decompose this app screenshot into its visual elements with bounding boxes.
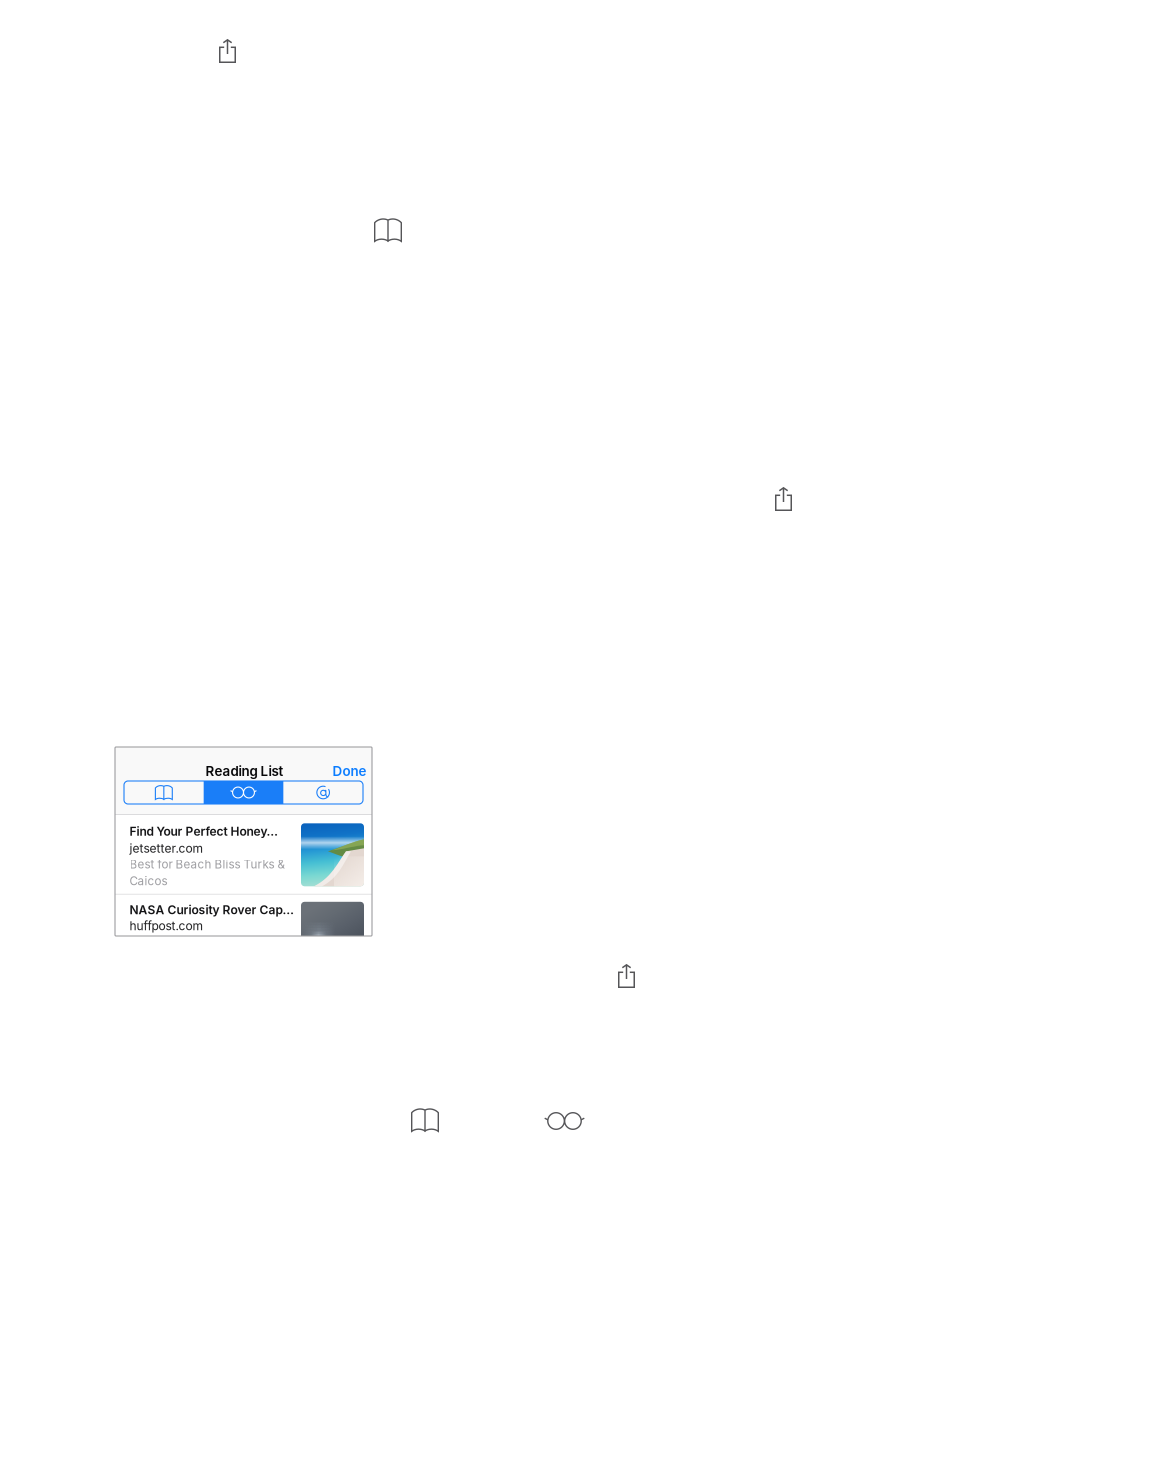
button[interactable]: Reading List [544, 1112, 585, 1130]
button[interactable]: Share [219, 39, 236, 63]
staticText: Best for Beach Bliss Turks & Caicos [129, 857, 284, 888]
button[interactable]: Shared Links [283, 781, 363, 804]
button[interactable]: Bookmarks [374, 218, 402, 242]
button[interactable]: Done [332, 763, 366, 779]
button[interactable]: Find Your Perfect Honey… [115, 815, 372, 894]
button[interactable]: Bookmarks [411, 1108, 439, 1132]
staticText: NASA Curiosity Rover Cap… [129, 902, 293, 917]
staticText: jetsetter.com [129, 841, 203, 855]
staticText: Done [332, 763, 366, 779]
staticText: huffpost.com [129, 918, 203, 933]
staticText: Find Your Perfect Honey… [129, 824, 277, 838]
staticText: Reading List [205, 763, 283, 779]
button[interactable]: Share [775, 487, 792, 511]
button[interactable]: Reading List [204, 781, 283, 804]
button[interactable]: Share [618, 964, 635, 988]
button[interactable]: NASA Curiosity Rover Cap… [115, 895, 372, 942]
button[interactable]: Bookmarks [124, 781, 204, 804]
